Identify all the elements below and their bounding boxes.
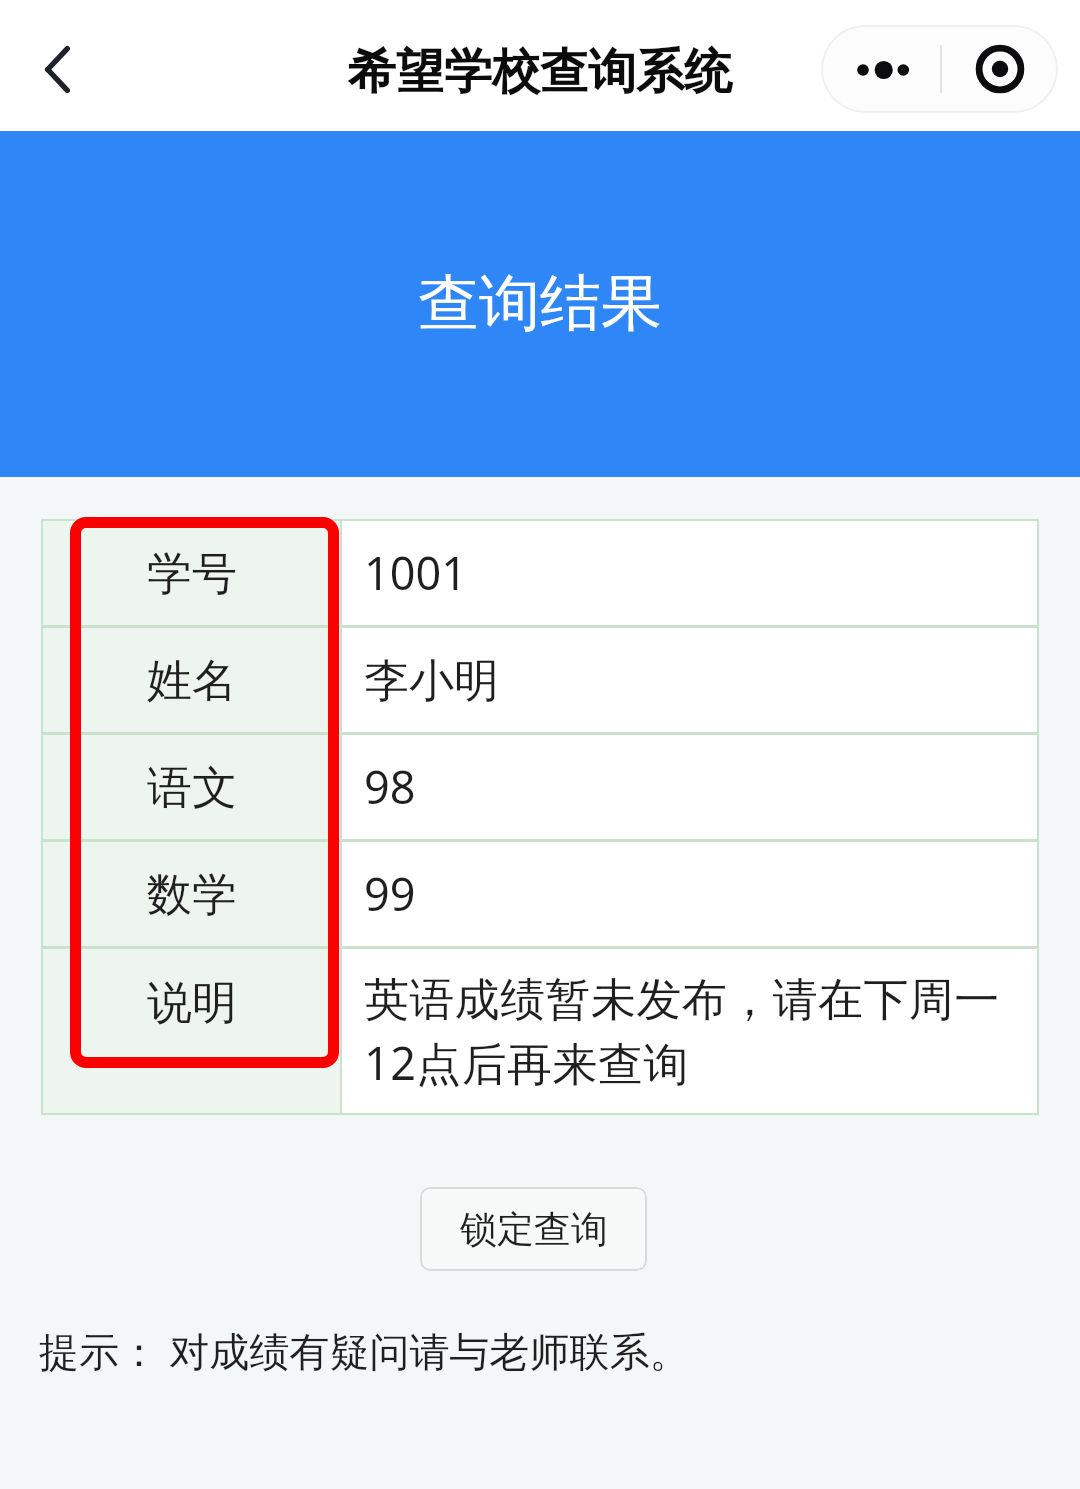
staticText: 1001 [364, 542, 467, 603]
button[interactable]: Close mini program [942, 25, 1058, 113]
staticText: 锁定查询 [460, 1206, 608, 1253]
staticText: 说明 [147, 975, 237, 1032]
staticText: 语文 [147, 760, 237, 817]
staticText: 98 [364, 756, 416, 817]
staticText: 李小明 [364, 653, 499, 710]
staticText: 数学 [147, 867, 237, 924]
staticText: 姓名 [147, 653, 237, 710]
staticText: 希望学校查询系统 [348, 42, 732, 102]
staticText: 99 [364, 863, 416, 924]
button[interactable]: 锁定查询 [420, 1187, 647, 1271]
staticText: 查询结果 [418, 265, 662, 342]
staticText: 提示： 对成绩有疑问请与老师联系。 [39, 1323, 690, 1378]
staticText: 学号 [147, 546, 237, 603]
button[interactable]: Back [9, 21, 105, 117]
button[interactable]: More options [821, 25, 940, 113]
staticText: 英语成绩暂未发布，请在下周一12点后再来查询 [364, 972, 1037, 1094]
